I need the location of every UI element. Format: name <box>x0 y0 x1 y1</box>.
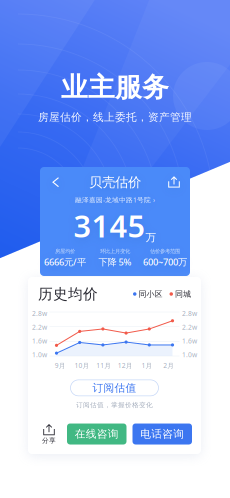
button[interactable]: 在线咨询 <box>67 423 126 444</box>
staticText: 1.6w <box>32 336 47 345</box>
staticText: 万 <box>145 231 156 244</box>
staticText: 3145 <box>73 205 145 246</box>
button[interactable]: Back <box>47 174 65 190</box>
staticText: 贝壳估价 <box>89 174 141 190</box>
staticText: 房屋估价，线上委托，资产管理 <box>38 111 192 124</box>
staticText: 2月 <box>163 361 174 370</box>
staticText: 2.8w <box>182 309 197 318</box>
button[interactable]: Share <box>165 174 183 190</box>
button[interactable]: 分享 <box>37 422 61 446</box>
button[interactable]: 订阅估值 <box>70 380 158 396</box>
staticText: 1.6w <box>182 336 197 345</box>
button[interactable]: 电话咨询 <box>132 423 192 444</box>
staticText: 12月 <box>118 361 133 370</box>
staticText: 2.8w <box>32 309 47 318</box>
staticText: 1.0w <box>32 350 47 359</box>
staticText: 订阅估值，掌握价格变化 <box>76 401 153 409</box>
staticText: › <box>153 195 155 204</box>
staticText: 6666元/平 <box>44 256 86 268</box>
staticText: 估价参考范围 <box>150 248 180 255</box>
staticText: 历史均价 <box>38 285 98 303</box>
staticText: 600~700万 <box>143 256 187 268</box>
staticText: 下降 5% <box>98 256 131 268</box>
staticText: 1月 <box>141 361 152 370</box>
staticText: 同城 <box>175 289 191 299</box>
staticText: 2.2w <box>32 323 47 332</box>
staticText: 环比上月变化 <box>100 248 130 255</box>
staticText: 订阅估值 <box>92 381 136 394</box>
staticText: 融泽嘉园-龙域中路1号院 <box>75 195 151 204</box>
staticText: 电话咨询 <box>140 427 184 440</box>
staticText: 10月 <box>74 361 89 370</box>
staticText: 9月 <box>55 361 66 370</box>
staticText: 业主服务 <box>61 71 169 104</box>
staticText: 2.2w <box>182 323 197 332</box>
staticText: 在线咨询 <box>75 427 119 440</box>
staticText: 分享 <box>42 436 56 445</box>
staticText: 1.0w <box>182 350 197 359</box>
staticText: 11月 <box>96 361 111 370</box>
staticText: 同小区 <box>138 289 162 299</box>
staticText: 房屋均价 <box>55 248 75 255</box>
